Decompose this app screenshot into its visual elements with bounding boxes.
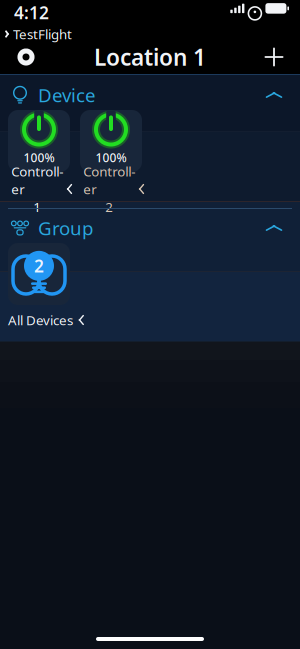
button[interactable]: Controller 2 power xyxy=(80,110,142,172)
staticText: Group xyxy=(38,216,93,240)
staticText: Controller xyxy=(11,162,63,198)
button[interactable]: Settings xyxy=(4,40,48,74)
button[interactable]: Collapse Group xyxy=(254,214,294,242)
staticText: Location 1 xyxy=(94,42,206,72)
button[interactable]: Collapse Device xyxy=(254,81,294,109)
staticText: 100% xyxy=(95,149,126,165)
staticText: Device xyxy=(38,83,96,107)
staticText: 2 xyxy=(34,254,44,277)
staticText: TestFlight xyxy=(13,25,72,43)
staticText: 4:12 xyxy=(14,1,49,24)
staticText: 1 xyxy=(33,198,41,216)
button[interactable]: Controller xyxy=(80,172,148,206)
button[interactable]: All Devices group xyxy=(8,243,70,305)
button[interactable]: All Devices xyxy=(8,305,85,335)
staticText: Controller xyxy=(83,162,135,198)
staticText: All Devices xyxy=(8,311,73,329)
button[interactable]: Controller xyxy=(8,172,76,206)
staticText: 100% xyxy=(23,149,54,165)
staticText: 2 xyxy=(105,198,113,216)
button[interactable]: Add xyxy=(252,40,296,74)
button[interactable]: Controller 1 power xyxy=(8,110,70,172)
